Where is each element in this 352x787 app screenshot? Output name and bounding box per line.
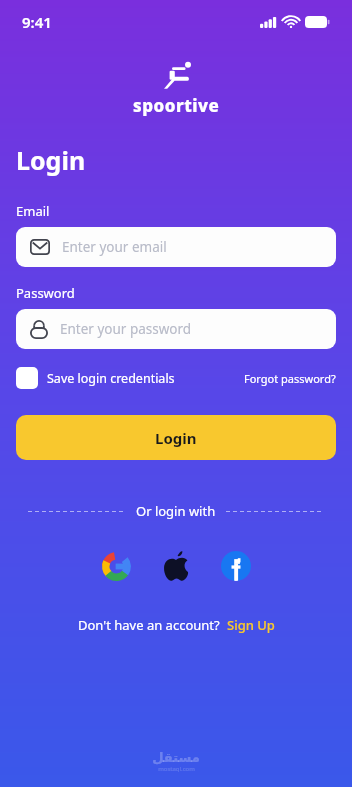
button[interactable]: Sign Up: [227, 616, 275, 634]
staticText: spoortive: [133, 94, 220, 117]
staticText: Login: [16, 143, 86, 177]
button[interactable]: Sign in with Google: [96, 546, 136, 586]
staticText: Sign Up: [227, 616, 275, 634]
staticText: Save login credentials: [47, 370, 175, 387]
button[interactable]: Login: [16, 415, 336, 460]
staticText: mostaql.com: [158, 765, 195, 773]
staticText: Or login with: [136, 502, 216, 520]
button[interactable]: Sign in with Facebook: [216, 546, 256, 586]
button[interactable]: Forgot password?: [244, 371, 336, 386]
staticText: 9:41: [22, 12, 52, 32]
staticText: Password: [16, 284, 75, 302]
staticText: Email: [16, 202, 50, 220]
staticText: Forgot password?: [244, 371, 336, 386]
staticText: Login: [155, 428, 197, 448]
button[interactable]: Sign in with Apple: [156, 546, 196, 586]
staticText: Enter your email: [62, 238, 167, 256]
button[interactable]: Save login credentials: [16, 367, 175, 389]
button[interactable]: Enter your password: [16, 309, 336, 349]
button[interactable]: Enter your email: [16, 227, 336, 267]
staticText: مستقل: [152, 750, 200, 765]
staticText: Don't have an account?: [78, 616, 220, 634]
staticText: Enter your password: [60, 320, 192, 338]
